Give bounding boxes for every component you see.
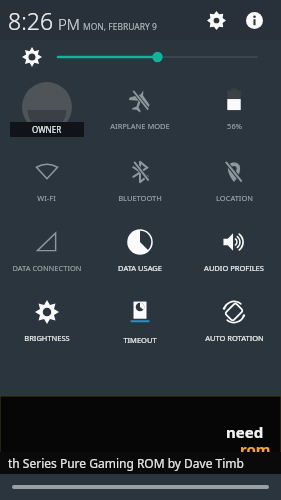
staticText: TIMEOUT: [123, 335, 157, 345]
staticText: AUTO ROTATION: [205, 333, 264, 343]
button[interactable]: BLUETOOTH: [93, 150, 187, 220]
button[interactable]: AIRPLANE MODE: [93, 78, 187, 150]
button[interactable]: Close quick settings: [0, 474, 281, 500]
staticText: BRIGHTNESS: [24, 333, 70, 343]
button[interactable]: Advertisement: [0, 396, 281, 474]
button[interactable]: 56%: [187, 78, 281, 150]
staticText: AUDIO PROFILES: [204, 263, 264, 273]
staticText: DATA CONNECTION: [12, 263, 82, 273]
button[interactable]: OWNER: [0, 78, 93, 150]
staticText: DATA USAGE: [118, 263, 162, 273]
staticText: PM: [58, 14, 80, 34]
button[interactable]: TIMEOUT: [93, 290, 187, 358]
button[interactable]: LOCATION: [187, 150, 281, 220]
staticText: LOCATION: [216, 193, 253, 203]
staticText: MON, FEBRUARY 9: [83, 21, 157, 33]
button[interactable]: DATA USAGE: [93, 220, 187, 290]
staticText: AIRPLANE MODE: [110, 121, 170, 131]
button[interactable]: Settings: [199, 3, 233, 37]
button[interactable]: Info: [237, 3, 271, 37]
staticText: need: [226, 422, 264, 442]
button[interactable]: WI-FI: [0, 150, 93, 220]
button[interactable]: AUTO ROTATION: [187, 290, 281, 358]
staticText: th Series Pure Gaming ROM by Dave Timb: [8, 455, 244, 471]
staticText: www.needrom.com: [217, 460, 273, 468]
staticText: BLUETOOTH: [118, 193, 162, 203]
staticText: 56%: [227, 121, 242, 131]
staticText: OWNER: [32, 124, 62, 135]
button[interactable]: BRIGHTNESS: [0, 290, 93, 358]
button[interactable]: DATA CONNECTION: [0, 220, 93, 290]
button[interactable]: AUDIO PROFILES: [187, 220, 281, 290]
staticText: WI-FI: [37, 193, 56, 203]
staticText: 8:26: [8, 5, 54, 36]
staticText: rom: [240, 439, 271, 459]
button[interactable]: Brightness slider: [0, 40, 281, 74]
